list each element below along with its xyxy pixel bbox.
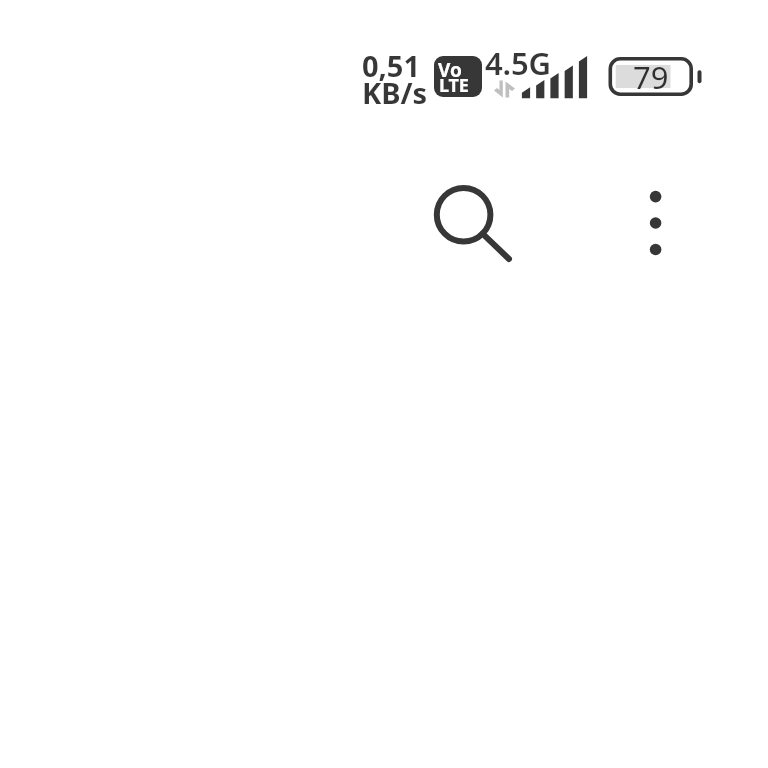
staticText: 4.5G — [485, 42, 551, 84]
button[interactable]: Search — [416, 167, 512, 263]
button[interactable]: More options — [628, 169, 684, 277]
staticText: 79 — [633, 56, 669, 98]
staticText: Vo — [438, 57, 462, 83]
staticText: LTE — [439, 73, 469, 97]
staticText: 0,51 — [362, 46, 421, 85]
staticText: KB/s — [362, 73, 428, 112]
